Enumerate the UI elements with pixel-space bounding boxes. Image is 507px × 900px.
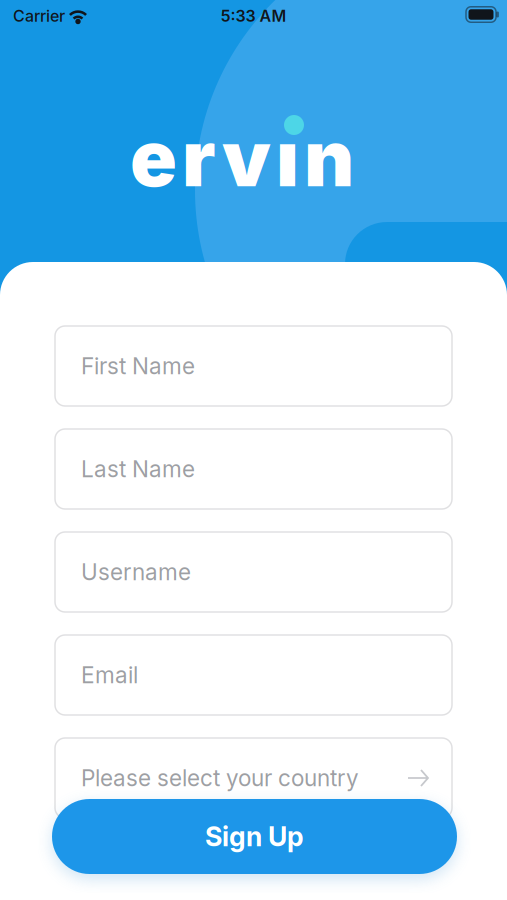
button[interactable]: Please select your country (55, 738, 452, 818)
staticText: Carrier (13, 7, 65, 25)
button[interactable]: Email (55, 635, 452, 715)
button[interactable]: Sign Up (52, 799, 457, 874)
staticText: Please select your country (81, 765, 359, 791)
button[interactable]: First Name (55, 326, 452, 406)
staticText: Last Name (81, 456, 195, 482)
staticText: ervın (130, 112, 354, 204)
staticText: 5:33 AM (220, 7, 286, 25)
staticText: Username (81, 559, 191, 585)
button[interactable]: Username (55, 532, 452, 612)
button[interactable]: Last Name (55, 429, 452, 509)
staticText: Email (81, 662, 138, 688)
staticText: Sign Up (205, 821, 304, 852)
staticText: First Name (81, 353, 195, 379)
